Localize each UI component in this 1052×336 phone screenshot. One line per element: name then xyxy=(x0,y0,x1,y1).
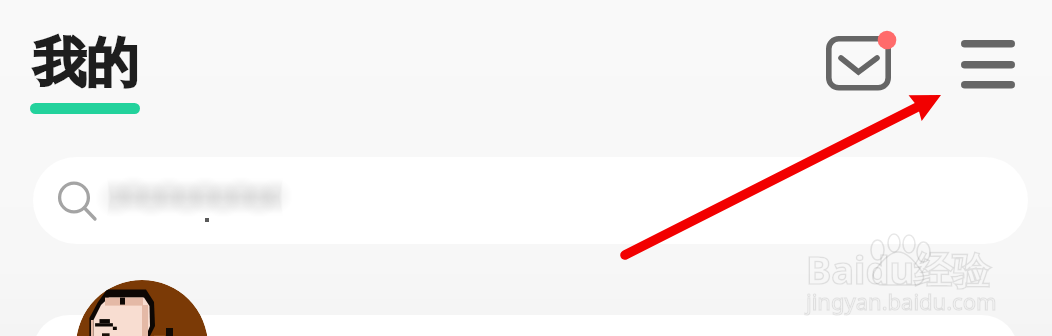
button[interactable] xyxy=(33,157,1028,244)
button[interactable] xyxy=(33,315,1018,336)
staticText: jingyan.baidu.com xyxy=(806,286,997,316)
staticText: 我的 xyxy=(33,30,139,97)
button[interactable]: Profile avatar xyxy=(76,280,208,336)
button[interactable]: 我的 xyxy=(33,30,143,108)
button[interactable]: Menu xyxy=(955,32,1021,98)
staticText: Baidu经验 xyxy=(806,243,991,295)
button[interactable]: Messages xyxy=(818,24,904,110)
